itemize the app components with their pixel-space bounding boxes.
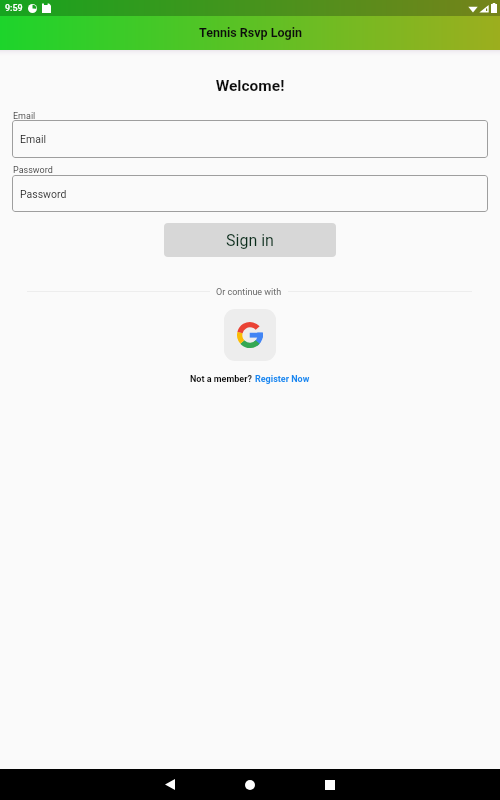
button[interactable]: Recent apps bbox=[303, 769, 357, 800]
button[interactable]: Sign in bbox=[164, 223, 336, 257]
staticText: Register Now bbox=[255, 374, 310, 385]
staticText: Email bbox=[20, 133, 46, 145]
other: Do not disturb bbox=[28, 4, 37, 13]
button[interactable]: Home bbox=[223, 769, 277, 800]
staticText: Tennis Rsvp Login bbox=[199, 25, 302, 40]
other: Storage bbox=[42, 3, 51, 13]
staticText: 9:59 bbox=[5, 3, 23, 14]
staticText: Email bbox=[13, 111, 36, 122]
staticText: Sign in bbox=[226, 231, 274, 250]
staticText: Not a member? bbox=[190, 374, 255, 385]
button[interactable]: Password bbox=[12, 175, 488, 212]
staticText: Password bbox=[20, 188, 67, 200]
button[interactable]: Sign in with Google bbox=[224, 309, 276, 361]
button[interactable]: Back bbox=[143, 769, 197, 800]
button[interactable]: Register Now bbox=[255, 374, 310, 385]
staticText: Password bbox=[13, 165, 53, 176]
staticText: Or continue with bbox=[216, 287, 282, 298]
button[interactable]: Email bbox=[12, 120, 488, 158]
staticText: Welcome! bbox=[0, 77, 500, 95]
